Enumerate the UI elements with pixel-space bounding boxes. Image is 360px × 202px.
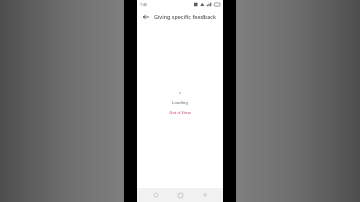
button[interactable]: Got it View <box>167 109 193 117</box>
staticText: Got it View <box>169 110 191 116</box>
staticText: 7:46 <box>140 2 148 7</box>
staticText: Giving specific feedback <box>154 13 216 20</box>
button[interactable]: Home <box>174 189 186 201</box>
button[interactable]: Back <box>140 11 151 22</box>
staticText: Loading <box>172 100 188 106</box>
button[interactable]: Recents <box>150 189 162 201</box>
button[interactable]: Back <box>199 189 211 201</box>
